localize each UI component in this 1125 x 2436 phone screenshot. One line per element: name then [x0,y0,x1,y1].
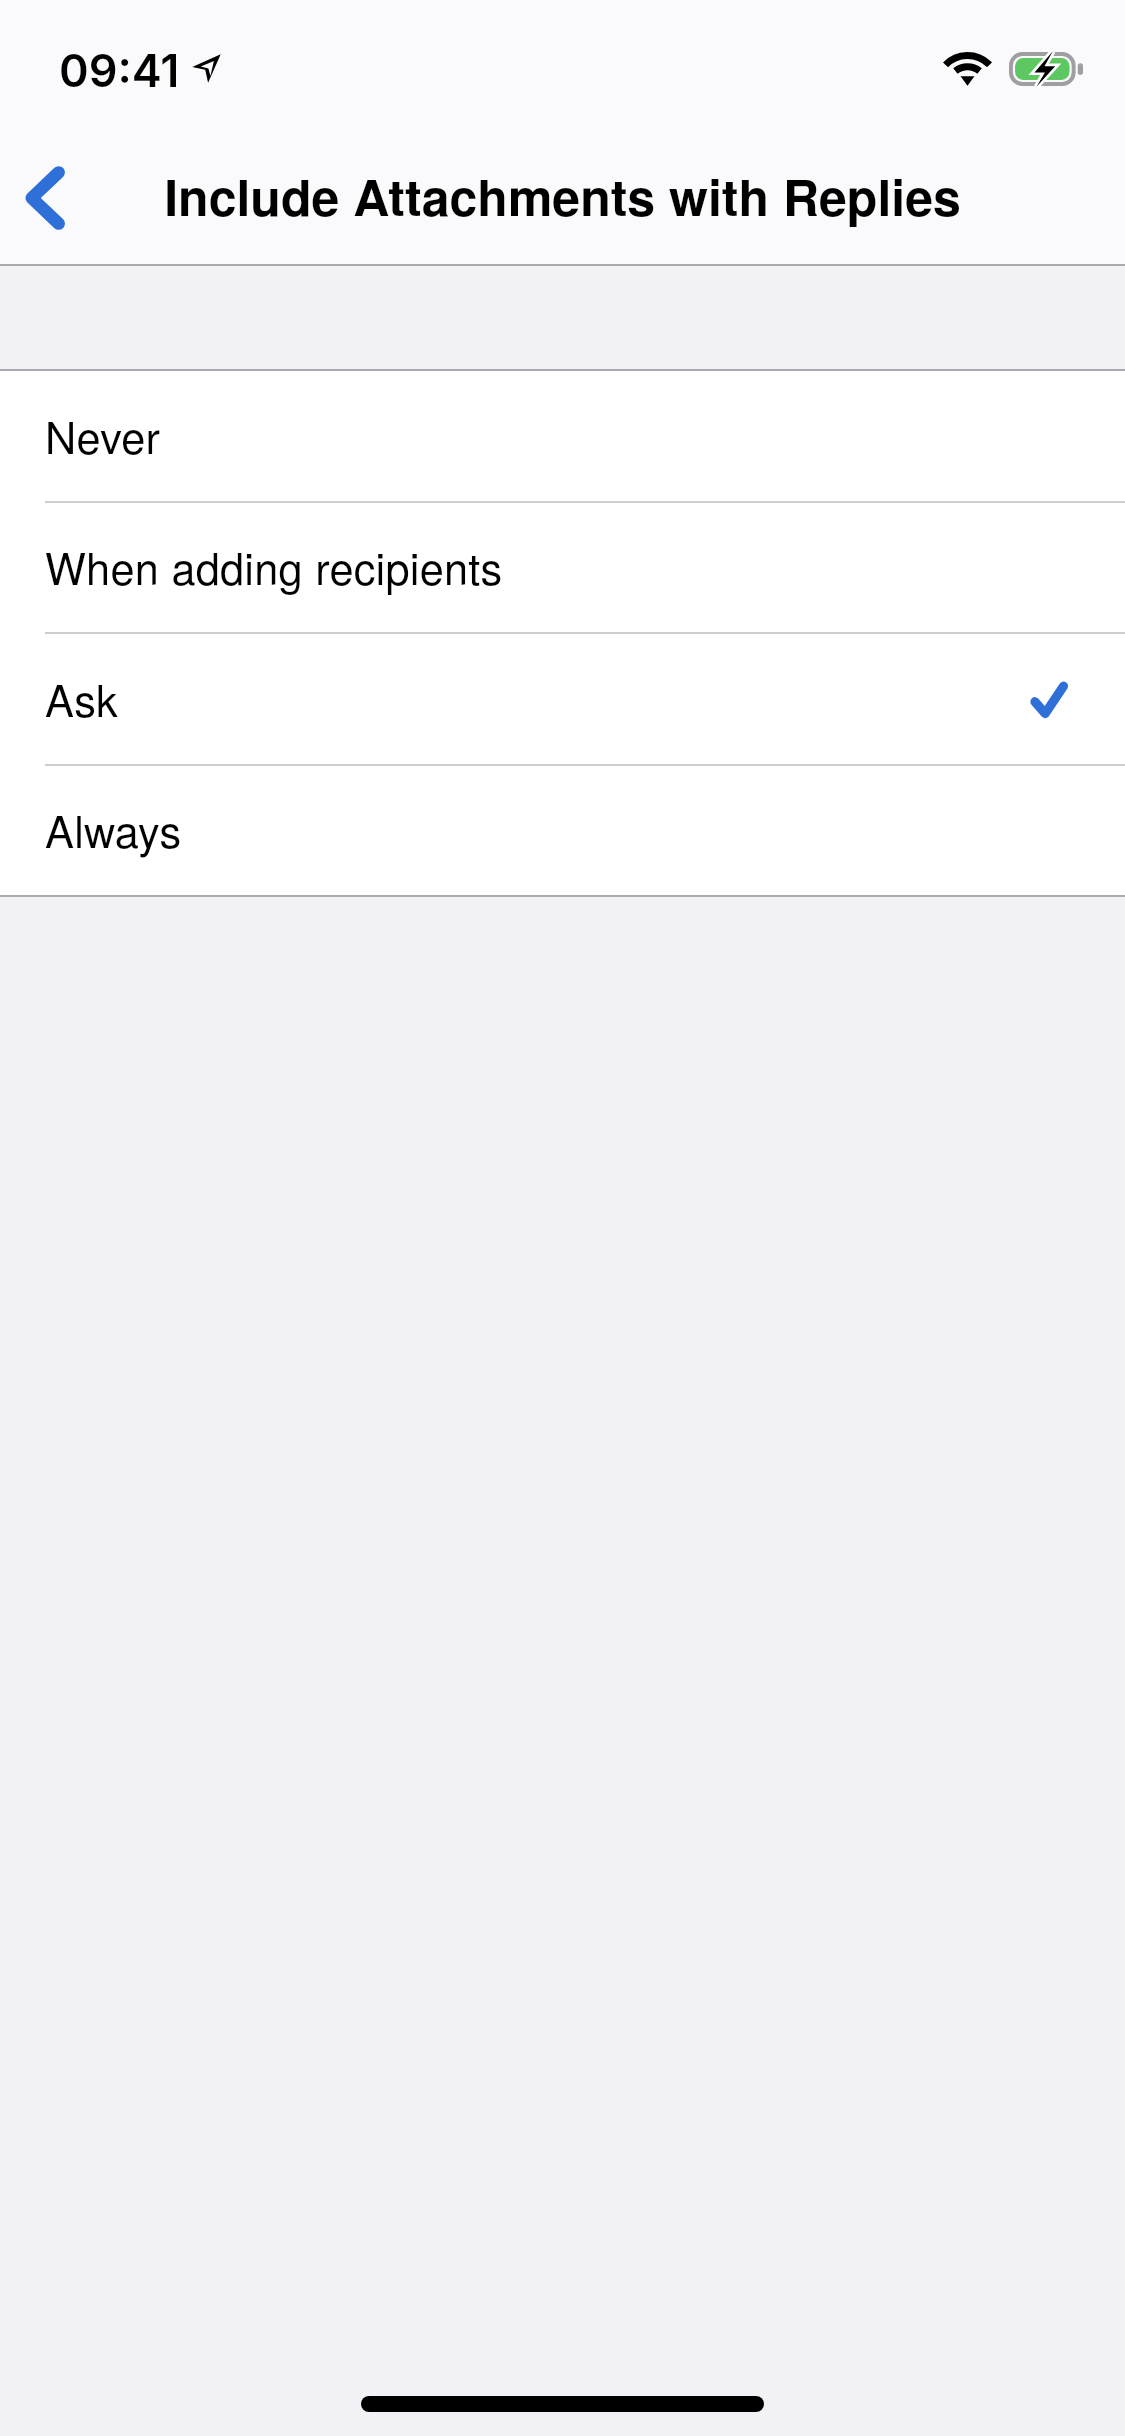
staticText: Always [45,798,182,860]
button[interactable]: Ask [0,634,1125,765]
button[interactable]: Never [0,371,1125,502]
staticText: Ask [45,667,118,729]
staticText: 09:41 [59,43,180,97]
staticText: Include Attachments with Replies [164,160,961,232]
button[interactable]: Always [0,765,1125,896]
button[interactable]: When adding recipients [0,502,1125,633]
staticText: Never [45,404,161,466]
staticText: When adding recipients [45,535,503,597]
button[interactable]: Back [0,152,90,244]
